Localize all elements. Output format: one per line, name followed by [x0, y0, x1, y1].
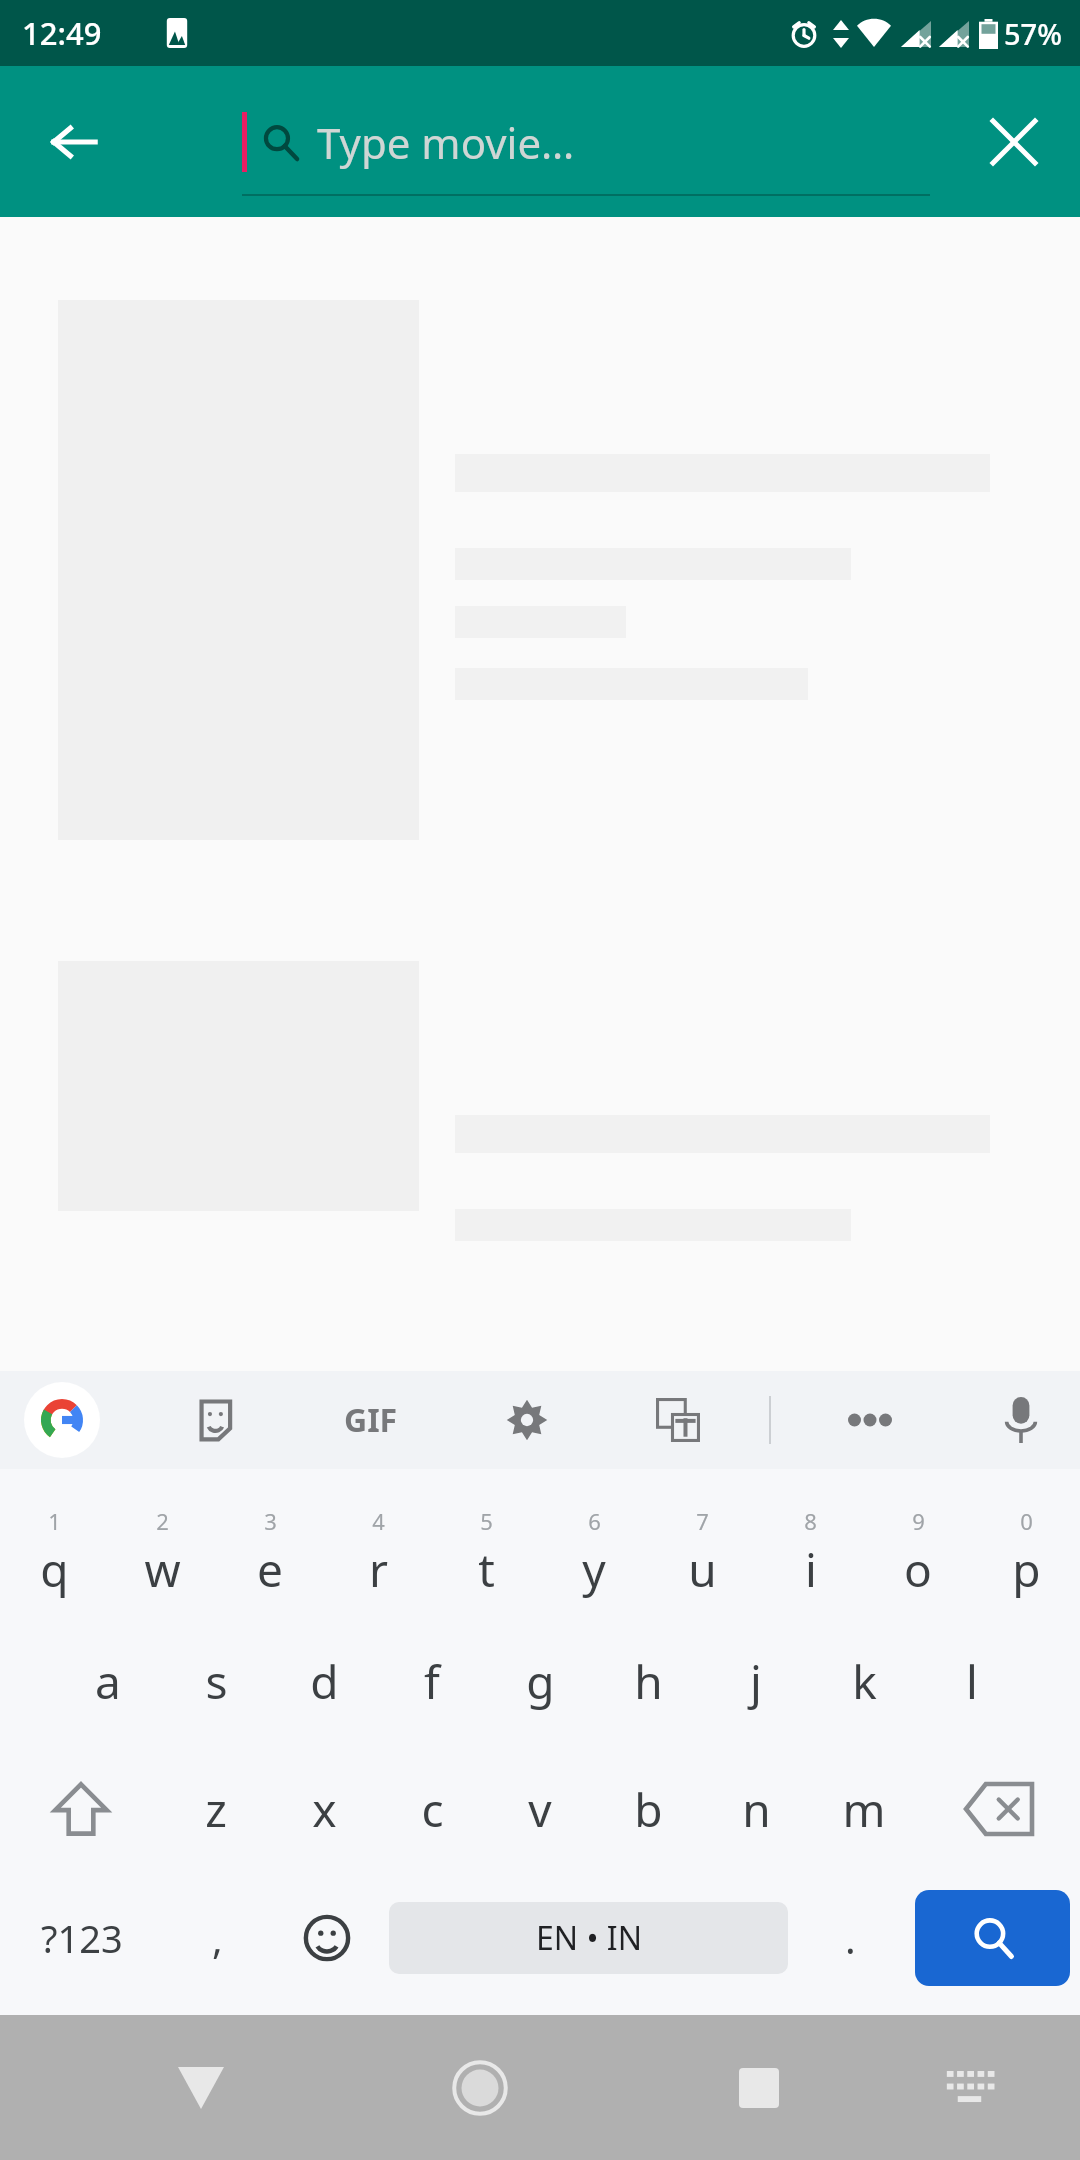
button[interactable]: Google [24, 1382, 100, 1458]
button[interactable]: h [594, 1617, 702, 1745]
button[interactable]: d [270, 1617, 378, 1745]
staticText: c [421, 1778, 444, 1841]
staticText: l [966, 1650, 978, 1713]
staticText: ?123 [41, 1912, 123, 1964]
button[interactable]: l [918, 1617, 1026, 1745]
staticText: u [688, 1538, 717, 1601]
staticText: z [205, 1778, 227, 1841]
button[interactable]: z [162, 1745, 270, 1873]
staticText: . [845, 1911, 856, 1965]
staticText: q [40, 1538, 69, 1601]
staticText: k [852, 1650, 877, 1713]
button[interactable]: More [835, 1385, 905, 1455]
button[interactable]: Stickers [180, 1385, 250, 1455]
staticText: m [842, 1778, 886, 1841]
staticText: 1 [48, 1506, 61, 1536]
button[interactable]: Search [915, 1890, 1070, 1986]
button[interactable]: 9 [864, 1489, 972, 1617]
button[interactable]: Emoji [272, 1873, 381, 2003]
button[interactable]: 0 [972, 1489, 1080, 1617]
staticText: 0 [1020, 1506, 1033, 1536]
button[interactable]: f [378, 1617, 486, 1745]
staticText: g [526, 1650, 555, 1713]
staticText: a [95, 1650, 121, 1713]
staticText: GIF [344, 1398, 398, 1442]
button[interactable]: 3 [216, 1489, 324, 1617]
button[interactable]: x [270, 1745, 378, 1873]
staticText: d [310, 1650, 339, 1713]
staticText: t [478, 1538, 495, 1601]
button[interactable]: . [796, 1873, 905, 2003]
button[interactable]: g [486, 1617, 594, 1745]
staticText: p [1012, 1538, 1041, 1601]
button[interactable]: k [810, 1617, 918, 1745]
button[interactable]: 6 [540, 1489, 648, 1617]
staticText: f [424, 1650, 440, 1713]
button[interactable]: Type movie… [242, 88, 930, 196]
staticText: v [528, 1778, 552, 1841]
button[interactable]: n [702, 1745, 810, 1873]
button[interactable]: EN • IN [389, 1902, 788, 1974]
button[interactable]: m [810, 1745, 918, 1873]
button[interactable]: Settings [492, 1385, 562, 1455]
button[interactable]: j [702, 1617, 810, 1745]
button[interactable]: v [486, 1745, 594, 1873]
button[interactable]: s [162, 1617, 270, 1745]
staticText: EN • IN [536, 1916, 642, 1960]
button[interactable]: Switch keyboard [905, 2015, 1038, 2160]
staticText: h [634, 1650, 663, 1713]
staticText: r [369, 1538, 388, 1601]
staticText: w [144, 1538, 181, 1601]
button[interactable]: Translate [643, 1385, 713, 1455]
staticText: y [582, 1538, 606, 1601]
button[interactable]: c [378, 1745, 486, 1873]
button[interactable]: Home [401, 2015, 559, 2160]
staticText: j [750, 1650, 762, 1713]
staticText: b [634, 1778, 663, 1841]
staticText: n [742, 1778, 771, 1841]
staticText: 5 [480, 1506, 493, 1536]
button[interactable]: 2 [108, 1489, 216, 1617]
staticText: 9 [912, 1506, 925, 1536]
staticText: s [205, 1650, 228, 1713]
button[interactable]: 8 [756, 1489, 864, 1617]
staticText: 4 [372, 1506, 385, 1536]
button[interactable]: Backspace [918, 1745, 1080, 1873]
staticText: 7 [696, 1506, 709, 1536]
button[interactable] [0, 300, 1080, 840]
button[interactable]: GIF [331, 1380, 411, 1460]
button[interactable]: 1 [0, 1489, 108, 1617]
button[interactable]: Back [30, 98, 118, 186]
button[interactable]: Clear [970, 98, 1058, 186]
staticText: 6 [588, 1506, 601, 1536]
staticText: o [904, 1538, 932, 1601]
button[interactable]: Recents [680, 2015, 838, 2160]
staticText: Type movie… [317, 114, 575, 171]
button[interactable]: 5 [432, 1489, 540, 1617]
staticText: , [212, 1911, 223, 1965]
staticText: x [312, 1778, 337, 1841]
button[interactable]: Voice input [986, 1385, 1056, 1455]
staticText: 12:49 [22, 12, 102, 54]
staticText: e [257, 1538, 283, 1601]
button[interactable]: a [54, 1617, 162, 1745]
button[interactable]: ?123 [0, 1873, 163, 2003]
staticText: 3 [264, 1506, 277, 1536]
button[interactable] [0, 961, 1080, 1241]
staticText: 8 [804, 1506, 817, 1536]
button[interactable]: b [594, 1745, 702, 1873]
staticText: i [805, 1538, 817, 1601]
button[interactable]: Back [122, 2015, 280, 2160]
button[interactable]: , [163, 1873, 272, 2003]
button[interactable]: Shift [0, 1745, 162, 1873]
button[interactable]: 4 [324, 1489, 432, 1617]
button[interactable]: 7 [648, 1489, 756, 1617]
staticText: 2 [156, 1506, 169, 1536]
staticText: 57% [1004, 14, 1062, 53]
